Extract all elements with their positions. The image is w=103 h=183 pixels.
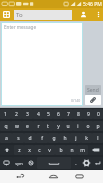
- staticText: m: [80, 147, 85, 154]
- staticText: 8: [77, 111, 80, 118]
- staticText: 3: [26, 111, 29, 118]
- staticText: sym: [15, 161, 23, 166]
- staticText: 0: [97, 111, 100, 118]
- staticText: h: [63, 135, 67, 142]
- staticText: o: [86, 123, 90, 130]
- staticText: 5:46 PM: [83, 1, 102, 8]
- button[interactable]: Change language: [25, 157, 37, 169]
- button[interactable]: Back: [0, 170, 38, 183]
- button[interactable]: i: [73, 121, 83, 131]
- button[interactable]: d: [24, 133, 36, 143]
- button[interactable]: Apps: [1, 8, 12, 21]
- staticText: b: [59, 147, 63, 154]
- staticText: 5: [47, 111, 50, 118]
- staticText: q: [4, 123, 8, 130]
- button[interactable]: r: [33, 121, 43, 131]
- staticText: Send: [87, 87, 99, 94]
- button[interactable]: q: [0, 121, 11, 131]
- button[interactable]: 0: [93, 109, 103, 119]
- button[interactable]: 4: [33, 109, 43, 119]
- staticText: s: [17, 135, 20, 142]
- staticText: k: [85, 135, 88, 142]
- staticText: 0/140: [71, 98, 81, 103]
- staticText: 7: [67, 111, 70, 118]
- button[interactable]: b: [55, 145, 66, 155]
- staticText: 6: [57, 111, 60, 118]
- staticText: t: [47, 123, 49, 130]
- button[interactable]: 6: [53, 109, 63, 119]
- button[interactable]: j: [70, 133, 81, 143]
- staticText: r: [37, 123, 40, 130]
- button[interactable]: v: [44, 145, 55, 155]
- button[interactable]: Send: [85, 85, 101, 95]
- button[interactable]: n: [66, 145, 77, 155]
- staticText: l: [97, 135, 99, 142]
- button[interactable]: a: [0, 133, 12, 143]
- staticText: x: [28, 147, 31, 154]
- button[interactable]: Enter: [92, 157, 103, 169]
- button[interactable]: 2: [11, 109, 22, 119]
- staticText: To: [16, 11, 23, 19]
- button[interactable]: l: [92, 133, 103, 143]
- button[interactable]: 8: [73, 109, 83, 119]
- staticText: Enter message: [4, 24, 37, 30]
- button[interactable]: Switch keyboard: [0, 157, 13, 169]
- button[interactable]: Add contact: [77, 8, 89, 21]
- button[interactable]: Enter message: [2, 23, 82, 105]
- staticText: j: [75, 135, 77, 142]
- staticText: a: [5, 135, 8, 142]
- button[interactable]: 9: [83, 109, 93, 119]
- button[interactable]: o: [83, 121, 93, 131]
- staticText: u: [66, 123, 70, 130]
- button[interactable]: u: [63, 121, 73, 131]
- staticText: n: [70, 147, 74, 154]
- staticText: 1: [4, 111, 7, 118]
- button[interactable]: Shift: [0, 145, 14, 155]
- button[interactable]: Attach file: [85, 95, 101, 105]
- staticText: 4: [37, 111, 40, 118]
- staticText: y: [57, 123, 60, 130]
- button[interactable]: Space: [37, 157, 71, 169]
- button[interactable]: e: [22, 121, 33, 131]
- staticText: 9: [87, 111, 90, 118]
- button[interactable]: x: [24, 145, 34, 155]
- staticText: p: [96, 123, 100, 130]
- button[interactable]: p: [93, 121, 103, 131]
- button[interactable]: Home: [38, 170, 68, 183]
- button[interactable]: 7: [63, 109, 73, 119]
- staticText: c: [38, 147, 41, 154]
- button[interactable]: More options: [94, 8, 102, 21]
- button[interactable]: t: [43, 121, 53, 131]
- button[interactable]: sym: [13, 157, 25, 169]
- button[interactable]: 3: [22, 109, 33, 119]
- staticText: g: [52, 135, 56, 142]
- staticText: .: [75, 160, 77, 167]
- button[interactable]: To: [14, 10, 72, 20]
- button[interactable]: m: [77, 145, 88, 155]
- button[interactable]: 5: [43, 109, 53, 119]
- button[interactable]: z: [14, 145, 24, 155]
- button[interactable]: g: [48, 133, 59, 143]
- staticText: d: [28, 135, 32, 142]
- button[interactable]: w: [11, 121, 22, 131]
- staticText: z: [18, 147, 21, 154]
- button[interactable]: y: [53, 121, 63, 131]
- button[interactable]: .: [71, 157, 81, 169]
- button[interactable]: s: [12, 133, 24, 143]
- staticText: w: [15, 123, 19, 130]
- button[interactable]: Recents: [68, 170, 103, 183]
- staticText: 2: [15, 111, 18, 118]
- staticText: f: [41, 135, 43, 142]
- button[interactable]: Backspace: [88, 145, 103, 155]
- staticText: e: [26, 123, 29, 130]
- button[interactable]: 1: [0, 109, 11, 119]
- button[interactable]: k: [81, 133, 92, 143]
- button[interactable]: f: [36, 133, 48, 143]
- button[interactable]: Settings: [81, 157, 92, 169]
- button[interactable]: h: [59, 133, 70, 143]
- staticText: v: [48, 147, 51, 154]
- staticText: i: [77, 123, 79, 130]
- button[interactable]: c: [34, 145, 44, 155]
